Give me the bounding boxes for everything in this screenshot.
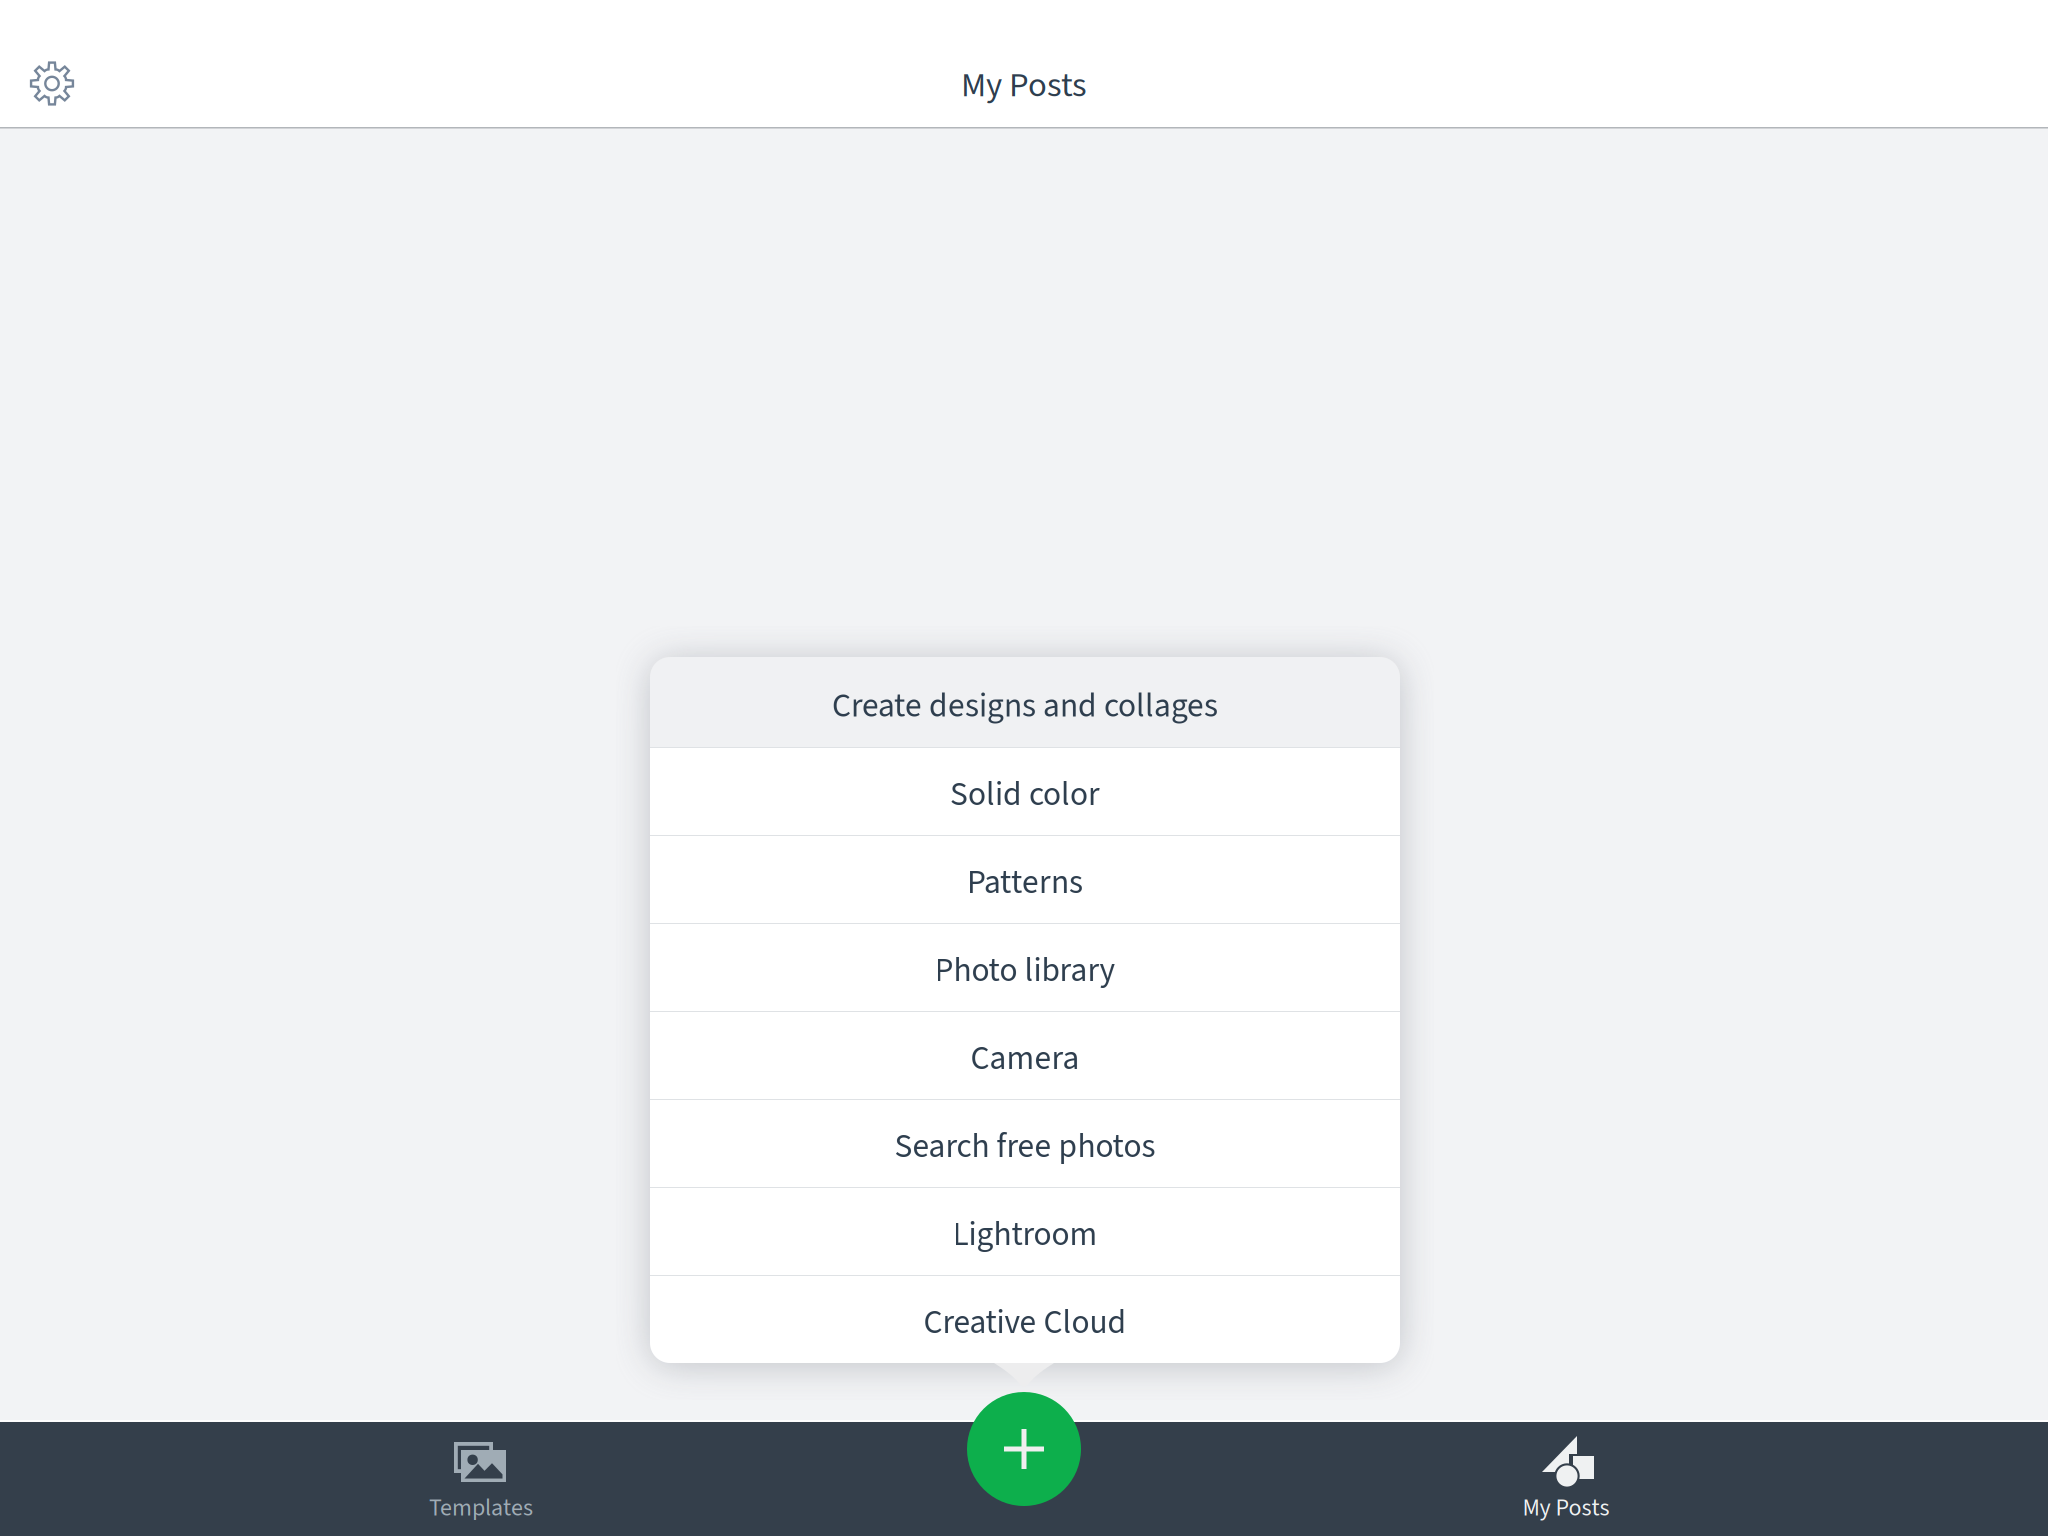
button[interactable]: Settings	[0, 40, 104, 127]
staticText: Patterns	[967, 859, 1083, 906]
button[interactable]: Solid color	[650, 748, 1400, 835]
button[interactable]: Lightroom	[650, 1188, 1400, 1275]
button[interactable]: Templates	[326, 1422, 626, 1536]
staticText: Camera	[970, 1035, 1079, 1082]
staticText: Photo library	[934, 947, 1115, 994]
staticText: Solid color	[950, 771, 1100, 818]
button[interactable]: Patterns	[650, 836, 1400, 923]
button[interactable]: Create new post	[967, 1392, 1081, 1506]
staticText: Lightroom	[952, 1211, 1097, 1258]
button[interactable]: Creative Cloud	[650, 1276, 1400, 1363]
button[interactable]: Camera	[650, 1012, 1400, 1099]
button[interactable]: Search free photos	[650, 1100, 1400, 1187]
staticText: Creative Cloud	[923, 1299, 1126, 1346]
staticText: Templates	[429, 1491, 533, 1525]
button[interactable]: Photo library	[650, 924, 1400, 1011]
staticText: Search free photos	[894, 1123, 1155, 1170]
button[interactable]: My Posts	[1424, 1422, 1724, 1536]
staticText: My Posts	[1522, 1491, 1609, 1525]
staticText: My Posts	[961, 61, 1087, 110]
staticText: Create designs and collages	[832, 682, 1218, 730]
